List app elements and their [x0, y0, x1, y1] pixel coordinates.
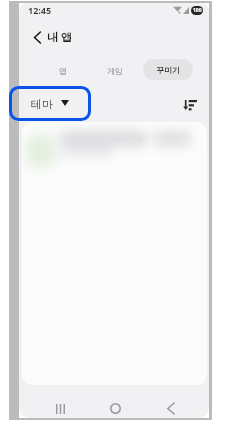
- button[interactable]: 게임: [104, 60, 125, 81]
- staticText: 12:45: [28, 4, 52, 16]
- button[interactable]: 꾸미기: [143, 59, 193, 80]
- button[interactable]: Back: [25, 25, 49, 49]
- staticText: 100: [193, 7, 202, 14]
- staticText: 게임: [107, 66, 123, 76]
- staticText: 꾸미기: [156, 65, 180, 75]
- button[interactable]: 앱: [54, 60, 72, 81]
- staticText: 앱: [59, 66, 67, 76]
- staticText: 내 앱: [47, 29, 72, 44]
- button[interactable]: Back: [159, 397, 182, 418]
- button[interactable]: Sort: [178, 93, 202, 117]
- button[interactable]: Home: [104, 397, 127, 418]
- button[interactable]: 테마: [27, 93, 85, 115]
- button[interactable]: Recents: [49, 397, 72, 418]
- staticText: 테마: [31, 97, 53, 111]
